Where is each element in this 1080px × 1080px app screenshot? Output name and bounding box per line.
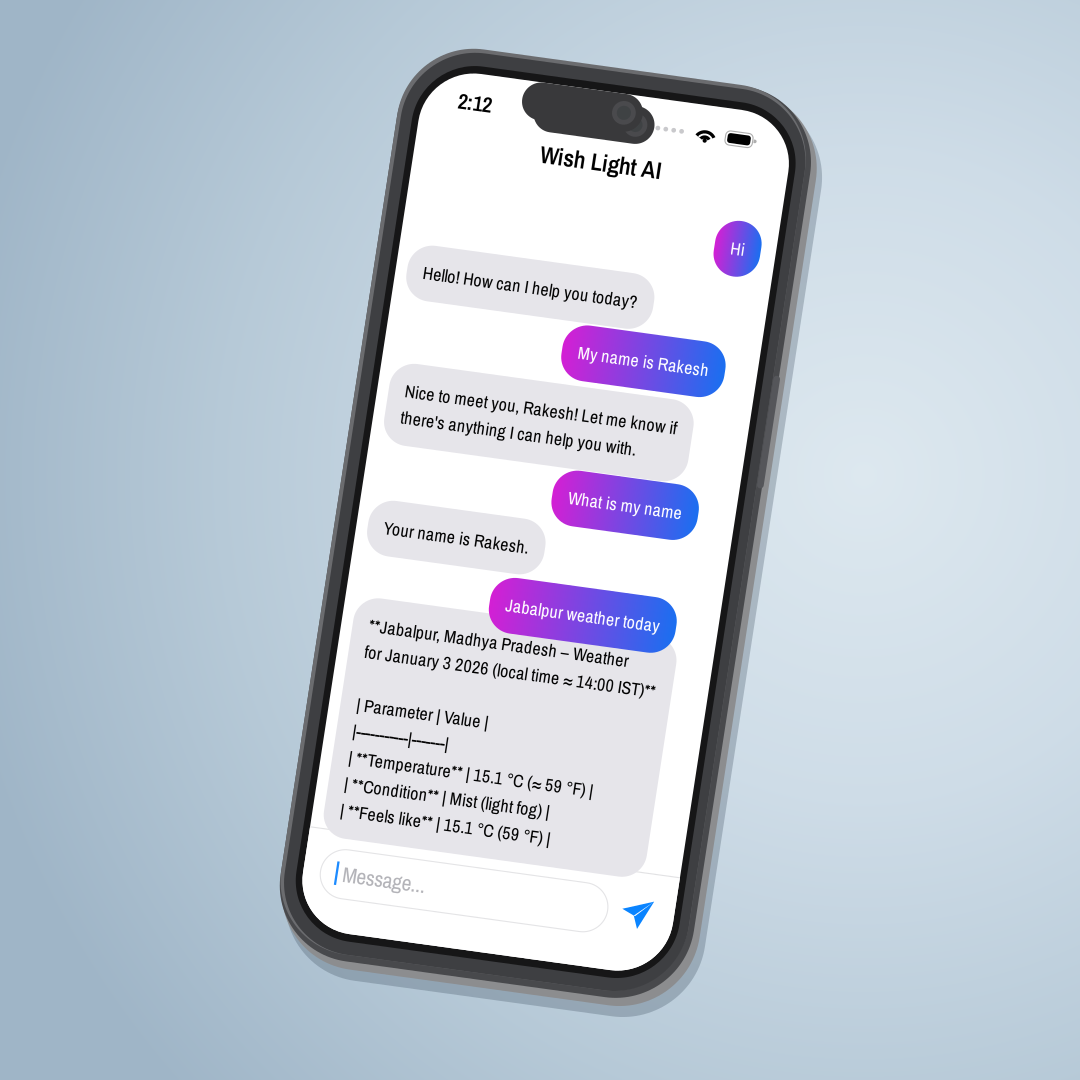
- staticText: Nice to meet you, Rakesh! Let me know if…: [29, 329, 318, 382]
- button[interactable]: Message...: [18, 829, 323, 881]
- staticText: Hello! How can I help you today?: [29, 203, 257, 228]
- staticText: Your name is Rakesh.: [29, 475, 183, 500]
- staticText: **Jabalpur, Madhya Pradesh – Weather for…: [29, 579, 338, 801]
- button[interactable]: Send message: [335, 836, 373, 874]
- staticText: Jabalpur weather today: [168, 538, 332, 563]
